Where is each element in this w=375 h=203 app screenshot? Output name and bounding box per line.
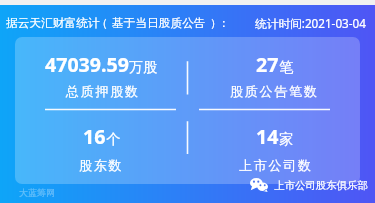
staticText: 47039.59 [45,51,129,78]
staticText: 上市公司股东俱乐部 [274,179,368,192]
staticText: 万股 [129,58,158,76]
staticText: ： [218,16,230,31]
other: WeChat [250,178,268,192]
staticText: 27 [256,51,279,78]
button[interactable]: 16 [15,37,188,184]
staticText: 笔 [279,58,294,76]
staticText: 统计时间:2021-03-04 [255,15,366,31]
staticText: 总质押股数 [65,83,139,99]
staticText: 16 [83,123,106,150]
button[interactable]: 14 [188,37,360,184]
staticText: 基于当日股质公告 [112,16,206,31]
staticText: （ [96,16,108,31]
staticText: 个 [106,130,121,148]
staticText: 股质公告笔数 [230,83,319,99]
staticText: 大蓝筹网 [19,187,55,198]
button[interactable]: WeChat [250,178,368,192]
staticText: 据云天汇财富统计 [6,16,100,31]
button[interactable]: 27 [188,37,360,184]
staticText: 14 [256,123,279,150]
staticText: 股东数 [79,157,124,173]
button[interactable]: 47039.59 [15,37,188,184]
staticText: ） [210,16,222,31]
staticText: 上市公司数 [238,157,312,173]
staticText: 家 [279,130,294,148]
